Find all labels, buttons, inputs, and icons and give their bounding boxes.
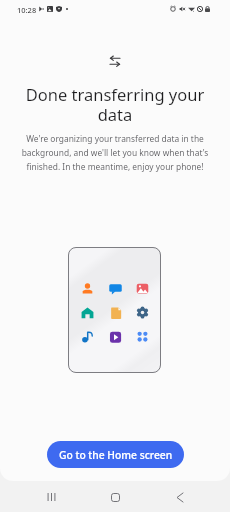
- button[interactable]: Recent apps: [37, 483, 65, 511]
- button[interactable]: Go to the Home screen: [47, 441, 184, 468]
- staticText: We're organizing your transferred data i…: [17, 133, 213, 172]
- staticText: 10:28: [17, 5, 37, 15]
- button[interactable]: Back: [166, 483, 194, 511]
- staticText: Go to the Home screen: [59, 448, 173, 462]
- button[interactable]: Home: [101, 483, 129, 511]
- staticText: Done transferring your data: [20, 83, 210, 126]
